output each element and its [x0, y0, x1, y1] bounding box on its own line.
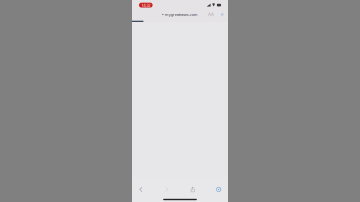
button[interactable]: Recording indicator: [139, 3, 153, 7]
button[interactable]: Tabs: [213, 186, 224, 193]
button[interactable]: Back: [135, 186, 146, 193]
button[interactable]: Page settings: [207, 11, 215, 17]
button[interactable]: mygreatnews.com: [162, 11, 198, 17]
staticText: AA: [208, 11, 214, 17]
staticText: mygreatnews.com: [165, 12, 198, 17]
button[interactable]: Close tab: [219, 11, 225, 17]
button[interactable]: Share: [187, 186, 198, 193]
staticText: 14:32: [141, 2, 150, 8]
